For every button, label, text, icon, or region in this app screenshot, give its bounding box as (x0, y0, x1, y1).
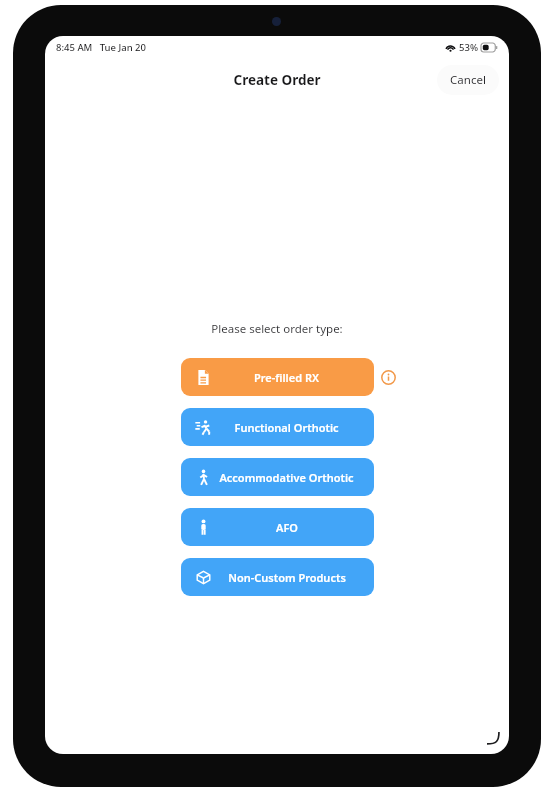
staticText: Functional Orthotic (234, 420, 339, 435)
staticText: Pre-filled RX (254, 370, 319, 385)
staticText: Non-Custom Products (228, 570, 346, 585)
button[interactable]: Pre-filled RX (181, 358, 374, 396)
staticText: 8:45 AM Tue Jan 20 (56, 41, 146, 54)
staticText: 53% (459, 41, 478, 54)
button[interactable]: Non-Custom Products (181, 558, 374, 596)
button[interactable]: Accommodative Orthotic (181, 458, 374, 496)
button[interactable]: Information about Pre-filled RX (377, 366, 399, 388)
button[interactable]: Cancel (437, 65, 499, 95)
staticText: Create Order (233, 71, 321, 89)
button[interactable]: AFO (181, 508, 374, 546)
staticText: Accommodative Orthotic (219, 470, 354, 485)
button[interactable]: Functional Orthotic (181, 408, 374, 446)
staticText: AFO (276, 520, 298, 535)
staticText: Cancel (450, 72, 486, 88)
staticText: Please select order type: (211, 321, 343, 337)
